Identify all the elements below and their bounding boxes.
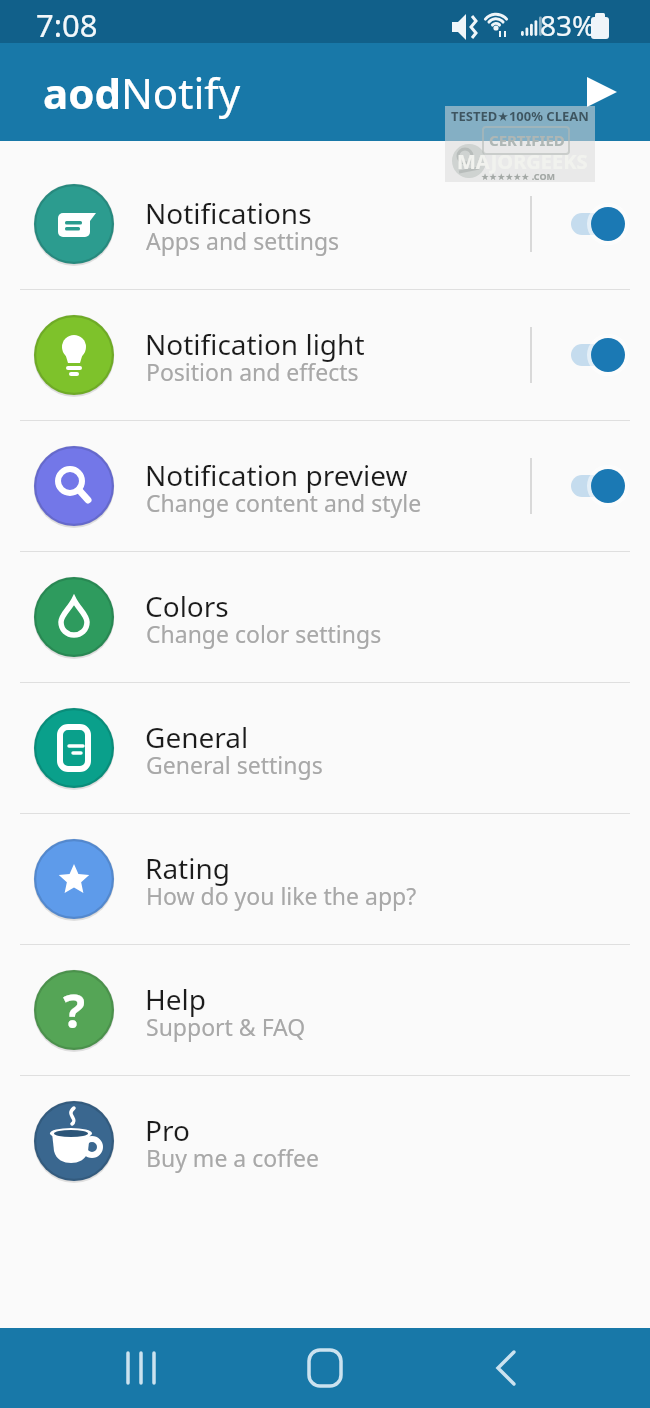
staticText: Pro: [145, 1111, 190, 1149]
staticText: Change color settings: [146, 618, 382, 649]
staticText: TESTED★100% CLEAN: [451, 107, 589, 125]
button[interactable]: Rating: [0, 814, 650, 944]
staticText: ?: [63, 979, 85, 1042]
button[interactable]: Colors: [0, 552, 650, 682]
button[interactable]: Notification preview: [0, 421, 650, 551]
staticText: How do you like the app?: [146, 880, 417, 911]
staticText: 7:08: [36, 4, 98, 46]
staticText: General settings: [146, 749, 323, 780]
button[interactable]: [560, 200, 630, 248]
staticText: 83%: [540, 6, 596, 44]
staticText: MAJORGEEKS: [457, 148, 588, 175]
staticText: Colors: [145, 587, 229, 625]
button[interactable]: [560, 462, 630, 510]
staticText: Notification light: [145, 325, 365, 363]
staticText: Rating: [145, 849, 230, 887]
staticText: Change content and style: [146, 487, 422, 518]
button[interactable]: [123, 1348, 163, 1388]
staticText: Buy me a coffee: [146, 1142, 319, 1173]
staticText: CERTIFIED: [489, 130, 565, 150]
staticText: Help: [145, 980, 206, 1018]
staticText: Position and effects: [146, 356, 359, 387]
button[interactable]: Notification light: [0, 290, 650, 420]
button[interactable]: [587, 76, 617, 108]
staticText: aodNotify: [43, 64, 241, 121]
staticText: Apps and settings: [146, 225, 340, 256]
staticText: Notifications: [145, 194, 312, 232]
button[interactable]: [560, 331, 630, 379]
button[interactable]: [305, 1348, 345, 1388]
staticText: General: [145, 718, 249, 756]
button[interactable]: [487, 1348, 527, 1388]
button[interactable]: ?: [0, 945, 650, 1075]
button[interactable]: Pro: [0, 1076, 650, 1206]
staticText: ★★★★★★ .COM: [481, 170, 556, 182]
button[interactable]: General: [0, 683, 650, 813]
button[interactable]: Notifications: [0, 159, 650, 289]
staticText: Notification preview: [145, 456, 408, 494]
staticText: Support & FAQ: [146, 1011, 306, 1042]
